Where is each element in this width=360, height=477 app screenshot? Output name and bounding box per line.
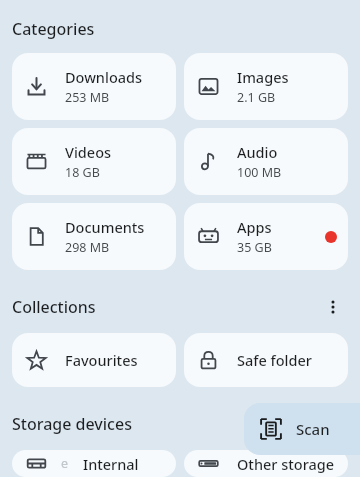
staticText: Internal (83, 454, 139, 474)
staticText: Collections (12, 296, 96, 318)
button[interactable]: Documents (12, 203, 176, 270)
staticText: Apps (237, 217, 272, 237)
button[interactable]: More options (318, 292, 348, 322)
button[interactable]: Downloads (12, 53, 176, 120)
staticText: 35 GB (237, 239, 272, 256)
button[interactable]: Videos (12, 128, 176, 195)
staticText: 2.1 GB (237, 89, 276, 106)
staticText: Safe folder (237, 350, 312, 370)
button[interactable]: Favourites (12, 333, 176, 387)
staticText: e (61, 455, 69, 472)
staticText: Documents (65, 217, 145, 237)
staticText: 18 GB (65, 164, 100, 181)
staticText: 100 MB (237, 164, 282, 181)
staticText: 298 MB (65, 239, 110, 256)
staticText: 253 MB (65, 89, 110, 106)
staticText: Other storage (237, 454, 335, 474)
button[interactable]: Other storage (184, 450, 348, 477)
button[interactable]: Scan (244, 403, 360, 455)
staticText: Images (237, 67, 289, 87)
staticText: Audio (237, 142, 278, 162)
staticText: Downloads (65, 67, 143, 87)
staticText: Categories (12, 18, 95, 40)
button[interactable]: e (12, 450, 176, 477)
staticText: Scan (296, 419, 330, 439)
button[interactable]: Audio (184, 128, 348, 195)
button[interactable]: Safe folder (184, 333, 348, 387)
button[interactable]: Images (184, 53, 348, 120)
button[interactable]: Apps (184, 203, 348, 270)
staticText: Favourites (65, 350, 138, 370)
staticText: Storage devices (12, 413, 132, 435)
staticText: Videos (65, 142, 112, 162)
